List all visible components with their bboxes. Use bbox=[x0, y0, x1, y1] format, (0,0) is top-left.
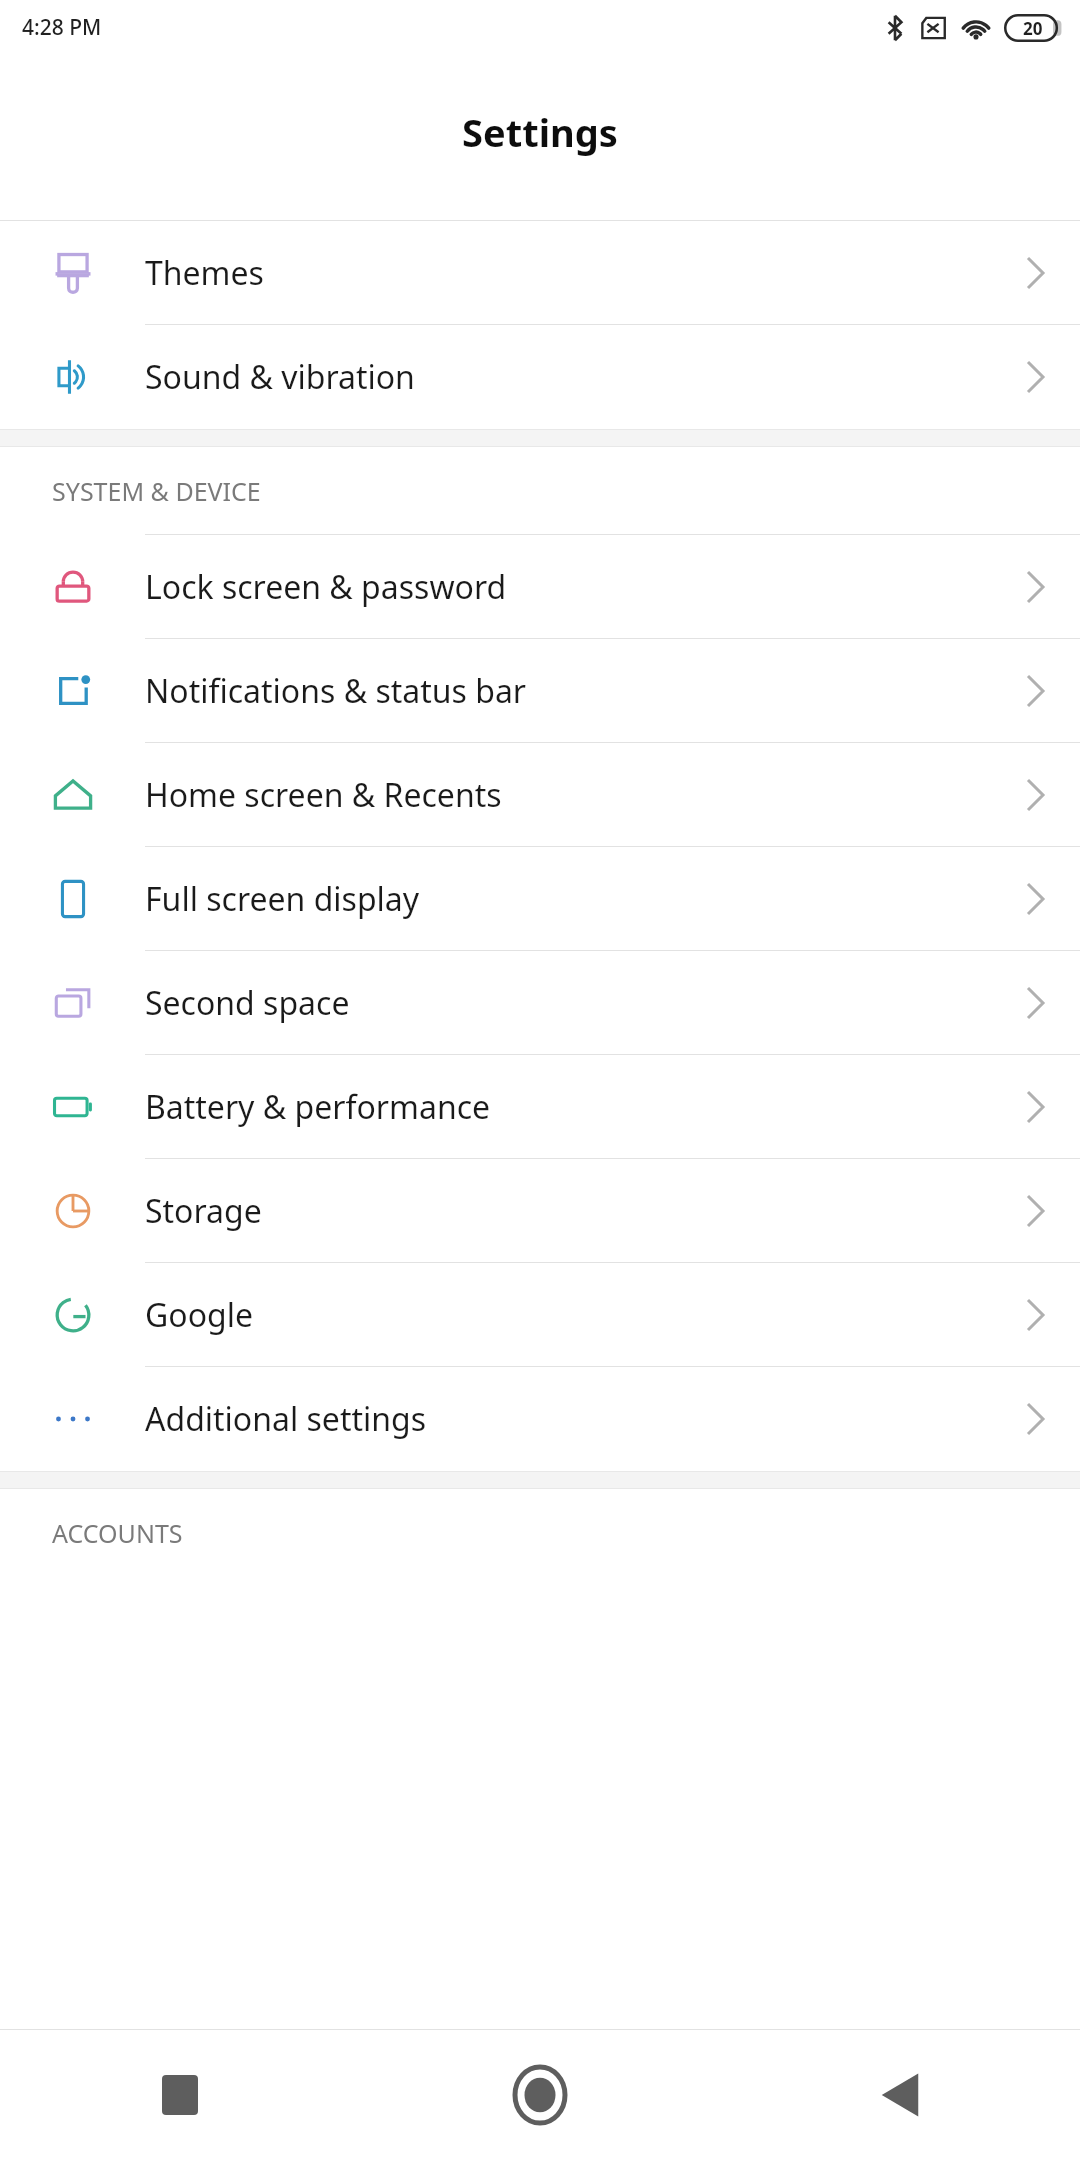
button[interactable]: Recents bbox=[0, 2030, 360, 2160]
staticText: Lock screen & password bbox=[145, 565, 990, 609]
button[interactable]: Back bbox=[720, 2030, 1080, 2160]
button[interactable]: Home screen & Recents bbox=[0, 743, 1080, 847]
staticText: Settings bbox=[462, 106, 618, 158]
staticText: Google bbox=[145, 1293, 990, 1337]
staticText: 20 bbox=[1023, 17, 1043, 40]
button[interactable]: Home bbox=[360, 2030, 720, 2160]
staticText: SYSTEM & DEVICE bbox=[52, 474, 261, 508]
staticText: 4:28 PM bbox=[22, 13, 102, 42]
staticText: Battery & performance bbox=[145, 1085, 990, 1129]
staticText: Sound & vibration bbox=[145, 355, 990, 399]
staticText: ACCOUNTS bbox=[52, 1516, 183, 1550]
staticText: Notifications & status bar bbox=[145, 669, 990, 713]
button[interactable]: Sound & vibration bbox=[0, 325, 1080, 429]
button[interactable]: Google bbox=[0, 1263, 1080, 1367]
button[interactable]: Notifications & status bar bbox=[0, 639, 1080, 743]
button[interactable]: Full screen display bbox=[0, 847, 1080, 951]
staticText: Storage bbox=[145, 1189, 990, 1233]
button[interactable]: Lock screen & password bbox=[0, 535, 1080, 639]
button[interactable]: Second space bbox=[0, 951, 1080, 1055]
button[interactable]: Themes bbox=[0, 221, 1080, 325]
staticText: Home screen & Recents bbox=[145, 773, 990, 817]
staticText: Full screen display bbox=[145, 877, 990, 921]
button[interactable]: Additional settings bbox=[0, 1367, 1080, 1471]
button[interactable]: Storage bbox=[0, 1159, 1080, 1263]
staticText: Themes bbox=[145, 251, 990, 295]
staticText: Second space bbox=[145, 981, 990, 1025]
button[interactable]: Battery & performance bbox=[0, 1055, 1080, 1159]
staticText: Additional settings bbox=[145, 1397, 990, 1441]
